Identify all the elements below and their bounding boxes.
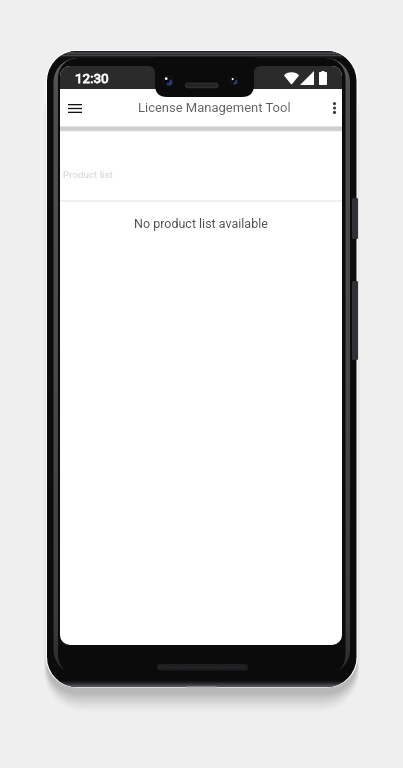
staticText: No product list available	[134, 216, 268, 231]
staticText: Product list	[63, 169, 113, 180]
staticText: License Management Tool	[138, 100, 291, 115]
staticText: 12:30	[75, 70, 109, 86]
button[interactable]: Open navigation menu	[61, 94, 89, 122]
button[interactable]: More options	[321, 95, 342, 121]
